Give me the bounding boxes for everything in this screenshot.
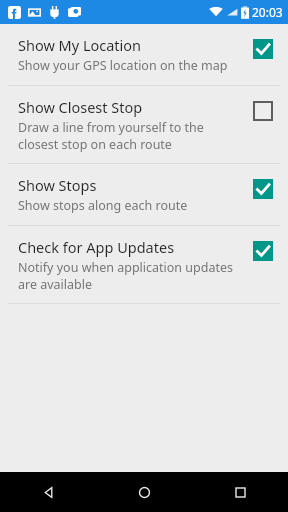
- staticText: 20:03: [252, 4, 283, 20]
- button[interactable]: Show Stops: [0, 164, 288, 225]
- button[interactable]: Check for App Updates: [0, 226, 288, 303]
- staticText: Check for App Updates: [18, 237, 175, 257]
- staticText: Notify you when application updates are …: [18, 259, 242, 292]
- staticText: Show Stops: [18, 175, 97, 195]
- button[interactable]: Show My Location: [0, 24, 288, 85]
- button[interactable]: Recent apps: [192, 472, 288, 512]
- staticText: Show your GPS location on the map: [18, 57, 228, 74]
- button[interactable]: Home: [96, 472, 192, 512]
- button[interactable]: Show Closest Stop: [0, 86, 288, 163]
- staticText: Show My Location: [18, 35, 142, 55]
- staticText: Show Closest Stop: [18, 97, 143, 117]
- button[interactable]: Back: [0, 472, 96, 512]
- staticText: Draw a line from yourself to the closest…: [18, 119, 242, 152]
- staticText: Show stops along each route: [18, 197, 188, 214]
